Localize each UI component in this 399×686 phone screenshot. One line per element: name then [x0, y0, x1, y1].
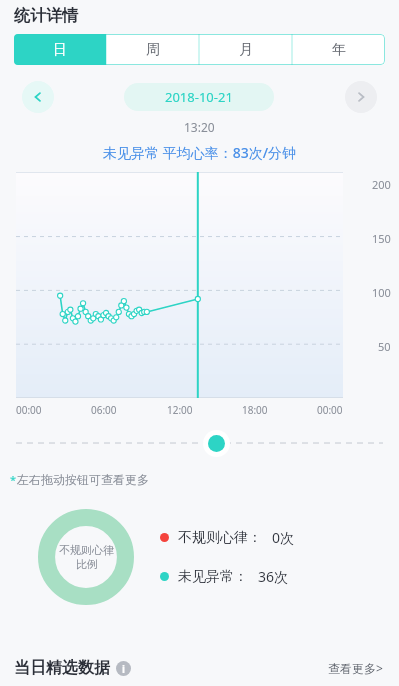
button[interactable]: Previous day [22, 81, 54, 113]
staticText: 统计详情 [14, 6, 78, 26]
staticText: 周 [146, 41, 160, 59]
button[interactable]: 月 [199, 34, 292, 65]
staticText: 左右拖动按钮可查看更多 [17, 472, 149, 487]
staticText: i [122, 662, 125, 676]
staticText: 0次 [272, 528, 295, 547]
staticText: 100 [372, 285, 391, 300]
staticText: * [10, 472, 17, 487]
button[interactable]: Info [116, 661, 131, 676]
staticText: 未见异常 平均心率：83次/分钟 [103, 143, 297, 162]
button[interactable]: Drag to view more [0, 428, 399, 458]
staticText: 50 [378, 339, 391, 354]
staticText: 查看更多> [328, 660, 383, 676]
staticText: 00:00 [317, 403, 343, 417]
button[interactable]: Next day [345, 81, 377, 113]
staticText: 12:00 [167, 403, 193, 417]
staticText: 年 [332, 41, 346, 59]
button[interactable]: 周 [106, 34, 199, 65]
staticText: 日 [53, 41, 67, 59]
button[interactable]: 2018-10-21 [124, 83, 274, 111]
button[interactable]: 年 [292, 34, 385, 65]
staticText: 不规则心律： [178, 529, 262, 547]
staticText: 06:00 [91, 403, 117, 417]
staticText: 月 [239, 41, 253, 59]
staticText: 200 [372, 177, 391, 192]
staticText: 00:00 [16, 403, 42, 417]
staticText: 2018-10-21 [165, 88, 233, 106]
staticText: 比例 [76, 557, 98, 571]
staticText: 18:00 [242, 403, 268, 417]
staticText: 当日精选数据 [14, 658, 110, 678]
staticText: 不规则心律 [59, 543, 114, 557]
staticText: 150 [372, 231, 391, 246]
staticText: 36次 [258, 567, 289, 586]
staticText: 未见异常： [178, 568, 248, 586]
button[interactable]: 日 [14, 34, 106, 65]
staticText: 13:20 [184, 119, 215, 135]
button[interactable]: 查看更多> [324, 656, 387, 680]
